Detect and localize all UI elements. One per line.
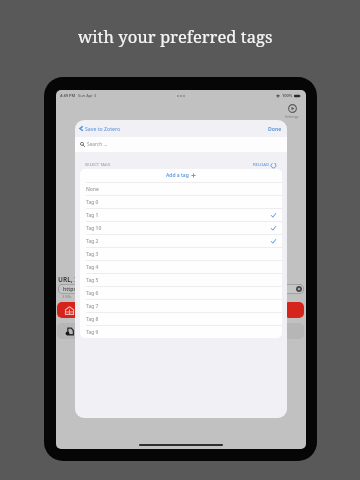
staticText: with your preferred tags: [78, 25, 273, 48]
staticText: Tag 1: [86, 212, 99, 219]
staticText: Tag 3: [86, 251, 99, 258]
staticText: Tag 2: [86, 238, 99, 245]
button[interactable]: Search ...: [75, 137, 287, 152]
button[interactable]: Document: [57, 323, 89, 339]
button[interactable]: Add a tag: [80, 169, 282, 182]
staticText: RELOAD: [253, 162, 269, 168]
staticText: Tag 7: [86, 303, 99, 310]
staticText: SELECT TAGS: [85, 162, 111, 168]
button[interactable]: Settings: [284, 104, 300, 119]
staticText: Sun Apr 3: [78, 93, 97, 98]
button[interactable]: Close: [281, 284, 304, 294]
button[interactable]: Tag 1: [80, 209, 282, 221]
button[interactable]: Tag 7: [80, 300, 282, 312]
button[interactable]: Save to Zotero: [78, 123, 122, 134]
button[interactable]: Tag 6: [80, 287, 282, 299]
button[interactable]: Tag 4: [80, 261, 282, 273]
staticText: 100%: [282, 93, 293, 98]
staticText: Tag 9: [86, 329, 99, 336]
button[interactable]: URL chip: [58, 284, 92, 294]
button[interactable]: Tag 3: [80, 248, 282, 260]
staticText: URL, IS: [58, 275, 81, 284]
staticText: Search ...: [87, 141, 108, 148]
button[interactable]: Tag 8: [80, 313, 282, 325]
button[interactable]: Tag 9: [80, 326, 282, 338]
button[interactable]: Done: [267, 123, 284, 134]
staticText: Tag 10: [86, 225, 102, 232]
staticText: Tag 4: [86, 264, 99, 271]
staticText: None: [86, 186, 99, 193]
button[interactable]: Home: [57, 302, 89, 318]
staticText: 3 Mb: [62, 294, 72, 299]
button[interactable]: Action: [284, 302, 304, 318]
button[interactable]: Tag 2: [80, 235, 282, 247]
staticText: https: [63, 286, 76, 293]
staticText: Add a tag: [166, 172, 189, 179]
staticText: Settings: [285, 114, 299, 119]
staticText: Tag 5: [86, 277, 99, 284]
button[interactable]: Tag 5: [80, 274, 282, 286]
staticText: 4:49 PM: [60, 93, 76, 98]
staticText: Done: [268, 125, 282, 132]
button[interactable]: Tag 0: [80, 196, 282, 208]
staticText: Tag 6: [86, 290, 99, 297]
staticText: Tag 0: [86, 199, 99, 206]
staticText: Save to Zotero: [85, 125, 121, 132]
button[interactable]: Action 2: [284, 323, 304, 339]
button[interactable]: Tag 10: [80, 222, 282, 234]
button[interactable]: RELOAD: [252, 162, 277, 168]
button[interactable]: None: [80, 183, 282, 195]
staticText: Tag 8: [86, 316, 99, 323]
